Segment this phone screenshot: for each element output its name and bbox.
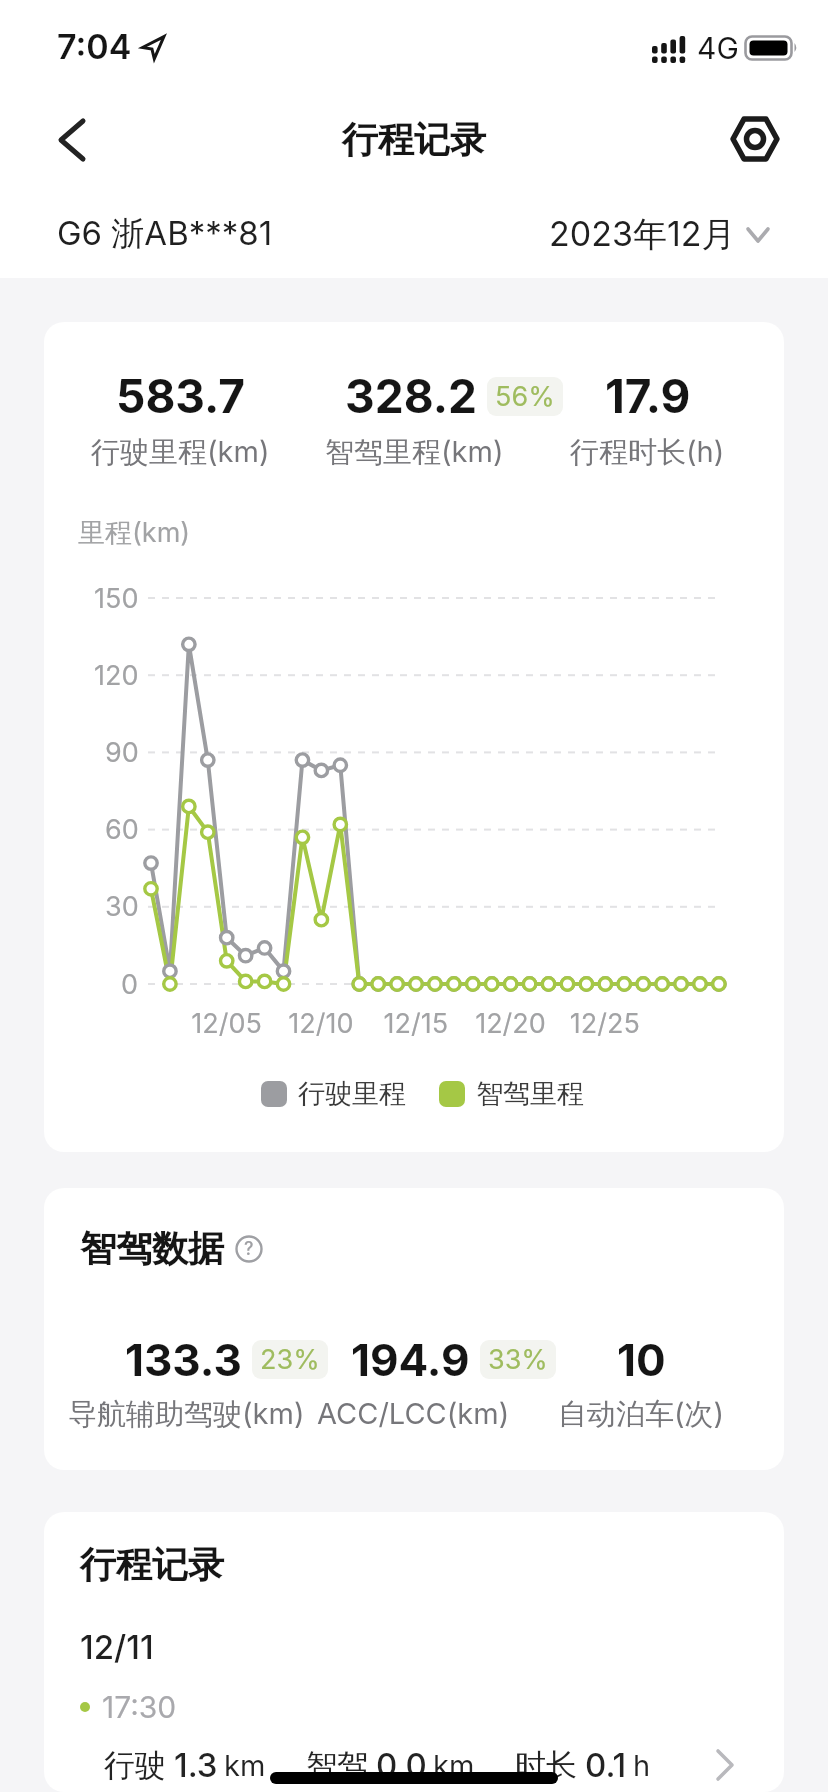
- button[interactable]: [40, 108, 104, 172]
- staticText: ACC/LCC(km): [317, 1396, 510, 1431]
- staticText: 行程时长(h): [570, 434, 725, 471]
- staticText: 17.9: [605, 368, 691, 424]
- staticText: 行驶: [104, 1746, 166, 1785]
- staticText: 智驾数据: [80, 1226, 224, 1271]
- staticText: 1.3: [174, 1745, 218, 1785]
- staticText: h: [633, 1748, 651, 1783]
- staticText: km: [433, 1748, 475, 1783]
- staticText: 行程记录: [80, 1542, 224, 1587]
- staticText: 133.3: [125, 1333, 242, 1386]
- staticText: km: [224, 1748, 266, 1783]
- staticText: 4G: [697, 30, 739, 66]
- staticText: 12/11: [80, 1627, 154, 1667]
- staticText: ?: [244, 1238, 254, 1260]
- staticText: 194.9: [351, 1333, 470, 1386]
- staticText: 0.0: [376, 1745, 427, 1785]
- staticText: 0.1: [585, 1745, 627, 1785]
- staticText: 56%: [495, 380, 555, 413]
- button[interactable]: 2023年12月: [549, 213, 770, 256]
- staticText: 23%: [260, 1343, 320, 1376]
- staticText: 自动泊车(次): [558, 1396, 725, 1433]
- staticText: 583.7: [116, 368, 246, 424]
- button[interactable]: [726, 110, 784, 168]
- staticText: 智驾: [306, 1746, 368, 1785]
- staticText: 时长: [515, 1746, 577, 1785]
- staticText: 行程记录: [342, 117, 486, 162]
- staticText: 7:04: [57, 26, 132, 67]
- staticText: 行驶里程(km): [91, 434, 270, 471]
- staticText: 智驾里程(km): [325, 434, 504, 471]
- button[interactable]: ?: [232, 1232, 266, 1266]
- staticText: 328.2: [345, 368, 477, 424]
- staticText: 33%: [488, 1343, 548, 1376]
- staticText: G6 浙AB***81: [57, 213, 273, 255]
- staticText: 2023年12月: [549, 213, 736, 256]
- staticText: 智驾里程: [476, 1077, 584, 1111]
- staticText: 17:30: [102, 1689, 177, 1725]
- staticText: 10: [617, 1333, 666, 1386]
- staticText: 行驶里程: [298, 1077, 406, 1111]
- button[interactable]: 行驶: [80, 1745, 748, 1785]
- staticText: 导航辅助驾驶(km): [68, 1396, 305, 1433]
